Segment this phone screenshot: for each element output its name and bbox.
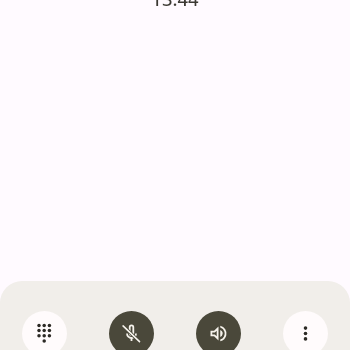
button[interactable]: Speaker xyxy=(196,311,241,350)
button[interactable]: More options xyxy=(283,311,328,350)
button[interactable]: Mute microphone xyxy=(109,311,154,350)
button[interactable]: Dialpad xyxy=(22,311,67,350)
staticText: 13:44 xyxy=(151,0,199,11)
